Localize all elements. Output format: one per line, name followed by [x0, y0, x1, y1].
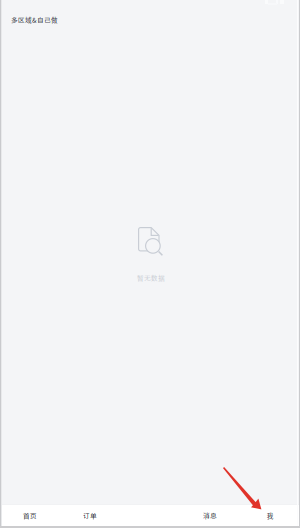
staticText: 我	[266, 511, 273, 520]
staticText: 订单	[83, 511, 97, 520]
staticText: 首页	[23, 511, 37, 520]
button[interactable]: 订单	[60, 504, 120, 527]
button[interactable]: 消息	[180, 504, 240, 527]
staticText: 多区域&自己做	[11, 15, 58, 25]
button[interactable]: 我	[240, 504, 300, 527]
staticText: 暂无数据	[137, 273, 165, 283]
staticText: 消息	[203, 511, 217, 520]
button[interactable]: 首页	[0, 504, 60, 527]
